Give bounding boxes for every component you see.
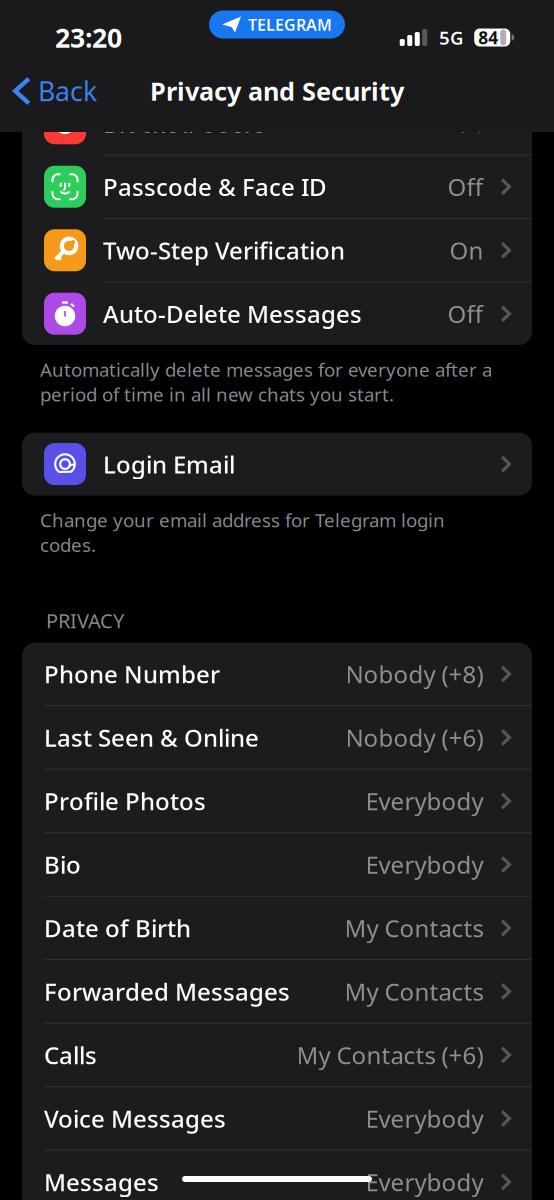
staticText: Automatically delete messages for everyo… bbox=[40, 357, 492, 407]
staticText: 5G bbox=[439, 25, 464, 50]
button[interactable]: Messages bbox=[22, 1151, 532, 1200]
staticText: Bio bbox=[44, 848, 81, 880]
button[interactable]: Profile Photos bbox=[22, 770, 532, 832]
staticText: Calls bbox=[44, 1039, 97, 1071]
staticText: Back bbox=[38, 73, 97, 109]
button[interactable]: Voice Messages bbox=[22, 1087, 532, 1150]
staticText: Last Seen & Online bbox=[44, 721, 259, 753]
button[interactable]: Phone Number bbox=[22, 643, 532, 705]
staticText: Everybody bbox=[365, 1102, 483, 1134]
staticText: Profile Photos bbox=[44, 785, 206, 817]
staticText: Everybody bbox=[365, 785, 483, 817]
button[interactable]: Forwarded Messages bbox=[22, 960, 532, 1023]
staticText: Messages bbox=[44, 1166, 159, 1198]
button[interactable]: Date of Birth bbox=[22, 897, 532, 959]
staticText: Privacy and Security bbox=[150, 74, 404, 108]
staticText: Everybody bbox=[365, 848, 483, 880]
button[interactable]: Bio bbox=[22, 833, 532, 896]
button[interactable]: Calls bbox=[22, 1024, 532, 1086]
staticText: Two-Step Verification bbox=[103, 234, 345, 266]
staticText: Passcode & Face ID bbox=[103, 171, 327, 203]
staticText: Everybody bbox=[365, 1166, 483, 1198]
staticText: Auto-Delete Messages bbox=[103, 298, 362, 330]
button[interactable]: Blocked Users bbox=[22, 92, 532, 154]
staticText: My Contacts bbox=[344, 975, 483, 1007]
staticText: Voice Messages bbox=[44, 1102, 226, 1134]
staticText: My Contacts bbox=[344, 912, 483, 944]
staticText: Forwarded Messages bbox=[44, 975, 290, 1007]
button[interactable]: Auto-Delete Messages bbox=[22, 282, 532, 345]
staticText: Phone Number bbox=[44, 658, 220, 690]
staticText: PRIVACY bbox=[46, 607, 124, 634]
button[interactable]: Passcode & Face ID bbox=[22, 155, 532, 218]
staticText: Nobody (+8) bbox=[345, 658, 483, 690]
button[interactable]: Two-Step Verification bbox=[22, 219, 532, 281]
staticText: TELEGRAM bbox=[248, 14, 332, 35]
staticText: Login Email bbox=[103, 448, 235, 480]
staticText: 84 bbox=[478, 26, 498, 49]
staticText: 14 bbox=[455, 107, 483, 139]
staticText: Nobody (+6) bbox=[345, 721, 483, 753]
staticText: Date of Birth bbox=[44, 912, 191, 944]
staticText: My Contacts (+6) bbox=[296, 1039, 483, 1071]
staticText: Off bbox=[447, 298, 483, 330]
staticText: Off bbox=[447, 171, 483, 203]
staticText: On bbox=[449, 234, 483, 266]
button[interactable]: Last Seen & Online bbox=[22, 706, 532, 769]
button[interactable]: Login Email bbox=[22, 433, 532, 496]
button[interactable]: Back bbox=[0, 67, 107, 115]
staticText: Blocked Users bbox=[103, 107, 266, 139]
staticText: 23:20 bbox=[55, 20, 122, 55]
staticText: Change your email address for Telegram l… bbox=[40, 508, 445, 557]
